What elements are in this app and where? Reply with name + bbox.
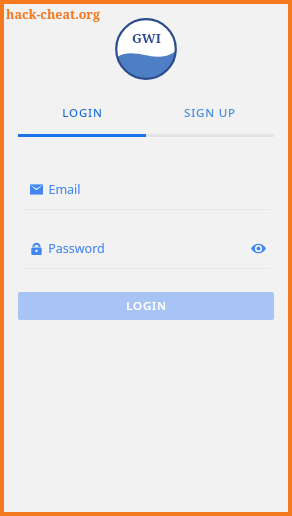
staticText: GWI	[132, 29, 161, 47]
staticText: LOGIN	[126, 298, 167, 314]
button[interactable]: Password	[22, 236, 270, 260]
button[interactable]: SIGN UP	[146, 100, 274, 126]
staticText: Email	[48, 181, 81, 198]
staticText: hack-cheat.org	[6, 6, 100, 23]
button[interactable]: Show password	[246, 236, 270, 260]
button[interactable]: Email	[22, 177, 270, 201]
staticText: LOGIN	[62, 105, 103, 121]
staticText: Password	[48, 240, 105, 257]
staticText: SIGN UP	[184, 105, 236, 121]
button[interactable]: LOGIN	[18, 292, 274, 320]
button[interactable]: LOGIN	[18, 100, 146, 126]
